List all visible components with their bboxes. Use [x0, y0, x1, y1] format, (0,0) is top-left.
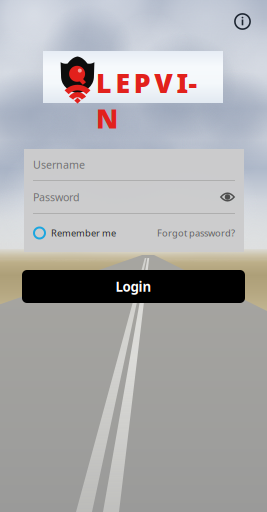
staticText: Remember me — [51, 227, 116, 239]
staticText: Username — [33, 157, 85, 172]
button[interactable]: Username — [24, 149, 244, 180]
button[interactable]: Login — [22, 270, 245, 303]
button[interactable]: Password — [24, 181, 244, 213]
staticText: LEPVIN — [96, 65, 214, 100]
staticText: Forgot password? — [157, 227, 235, 239]
button[interactable]: Remember me — [33, 214, 116, 252]
button[interactable]: Information — [227, 6, 258, 37]
staticText: Login — [115, 278, 151, 295]
staticText: Password — [33, 190, 80, 204]
button[interactable]: Forgot password? — [157, 214, 235, 252]
